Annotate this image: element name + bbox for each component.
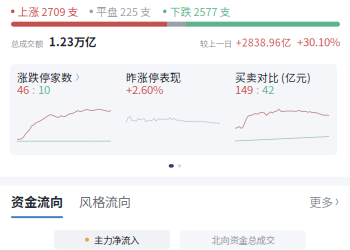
button[interactable]: 主力净流入: [54, 230, 170, 249]
staticText: 46: [17, 82, 29, 96]
staticText: 上涨 2709 支: [17, 5, 78, 18]
staticText: 风格流向: [79, 194, 131, 209]
staticText: 42: [262, 82, 274, 96]
staticText: :: [256, 82, 259, 96]
button[interactable]: 风格流向: [63, 194, 131, 209]
staticText: +2838.96亿: [232, 36, 291, 48]
button[interactable]: 北向资金总成交: [180, 230, 306, 249]
button[interactable]: 昨涨停表现: [119, 64, 228, 155]
staticText: 资金流向: [11, 194, 63, 209]
button[interactable]: 买卖对比 (亿元): [228, 64, 337, 155]
staticText: 149: [235, 82, 253, 96]
staticText: 总成交额: [11, 39, 43, 48]
button[interactable]: 更多: [309, 195, 339, 209]
staticText: 平盘 225 支: [96, 5, 151, 18]
staticText: +2.60%: [126, 82, 163, 96]
button[interactable]: 涨跌停家数: [10, 64, 119, 155]
staticText: :: [32, 82, 35, 96]
staticText: 10: [38, 82, 50, 96]
staticText: 昨涨停表现: [126, 71, 181, 83]
staticText: 较上一日: [200, 39, 232, 48]
staticText: 更多: [309, 195, 333, 209]
staticText: 下跌 2577 支: [169, 5, 230, 18]
staticText: 涨跌停家数: [17, 71, 72, 83]
button[interactable]: 资金流向: [11, 194, 63, 209]
staticText: 主力净流入: [94, 234, 139, 245]
staticText: 买卖对比 (亿元): [235, 71, 311, 83]
staticText: 1.23万亿: [43, 35, 96, 48]
staticText: 北向资金总成交: [211, 234, 274, 245]
staticText: +30.10%: [291, 35, 340, 48]
